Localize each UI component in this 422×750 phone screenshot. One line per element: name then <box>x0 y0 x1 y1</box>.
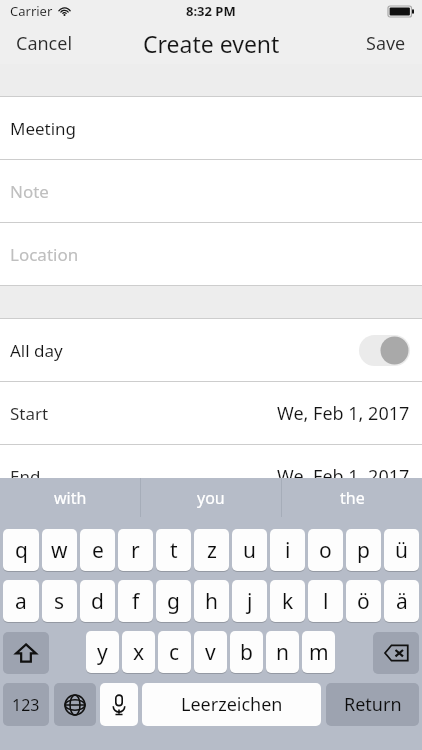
button[interactable]: Dictation <box>100 683 138 726</box>
button[interactable]: k <box>270 580 305 622</box>
button[interactable]: b <box>230 631 263 673</box>
staticText: Start <box>10 402 49 425</box>
button[interactable]: Shift <box>3 632 49 674</box>
button[interactable]: Start <box>0 382 422 444</box>
staticText: Save <box>366 31 406 56</box>
button[interactable]: j <box>232 580 267 622</box>
button[interactable]: Backspace <box>373 632 419 674</box>
staticText: Note <box>10 180 49 203</box>
staticText: Cancel <box>16 31 73 56</box>
button[interactable]: c <box>158 631 191 673</box>
button[interactable]: All day <box>0 319 422 381</box>
staticText: s <box>54 587 65 616</box>
staticText: Return <box>344 692 402 717</box>
staticText: Carrier <box>10 2 53 20</box>
staticText: the <box>340 487 365 509</box>
staticText: j <box>247 587 253 616</box>
button[interactable]: Note <box>0 160 422 222</box>
staticText: ä <box>396 587 408 616</box>
button[interactable]: Cancel <box>0 22 89 64</box>
staticText: n <box>276 638 289 667</box>
staticText: b <box>240 638 253 667</box>
button[interactable]: g <box>156 580 191 622</box>
button[interactable]: Return <box>326 683 419 726</box>
button[interactable]: ü <box>384 529 419 571</box>
button[interactable]: h <box>194 580 229 622</box>
button[interactable]: f <box>118 580 153 622</box>
staticText: Leerzeichen <box>181 692 283 717</box>
button[interactable]: e <box>80 529 115 571</box>
staticText: t <box>170 536 178 565</box>
button[interactable]: q <box>3 529 39 571</box>
staticText: All day <box>10 339 63 362</box>
staticText: a <box>15 587 27 616</box>
staticText: 123 <box>12 694 40 716</box>
button[interactable]: w <box>42 529 77 571</box>
button[interactable]: ä <box>384 580 419 622</box>
button[interactable]: y <box>86 631 119 673</box>
staticText: e <box>92 536 104 565</box>
staticText: o <box>319 536 332 565</box>
button[interactable]: o <box>308 529 343 571</box>
button[interactable]: p <box>346 529 381 571</box>
button[interactable]: i <box>270 529 305 571</box>
staticText: z <box>207 536 217 565</box>
button[interactable]: u <box>232 529 267 571</box>
button[interactable]: v <box>194 631 227 673</box>
staticText: We, Feb 1, 2017 <box>277 401 410 426</box>
staticText: f <box>132 587 140 616</box>
staticText: you <box>197 487 225 509</box>
button[interactable]: 123 <box>3 683 49 726</box>
button[interactable]: z <box>194 529 229 571</box>
button[interactable]: Change keyboard language <box>54 683 96 726</box>
button[interactable]: Leerzeichen <box>142 683 321 726</box>
staticText: u <box>243 536 256 565</box>
staticText: End <box>10 465 41 488</box>
button[interactable]: r <box>118 529 153 571</box>
button[interactable]: Location <box>0 223 422 285</box>
staticText: We, Feb 1, 2017 <box>277 464 410 489</box>
staticText: i <box>285 536 291 565</box>
staticText: 8:32 PM <box>186 2 236 20</box>
staticText: x <box>133 638 145 667</box>
staticText: h <box>205 587 218 616</box>
button[interactable]: ö <box>346 580 381 622</box>
button[interactable]: Meeting <box>0 97 422 159</box>
staticText: r <box>131 536 140 565</box>
staticText: q <box>15 536 28 565</box>
staticText: d <box>91 587 104 616</box>
button[interactable]: l <box>308 580 343 622</box>
staticText: g <box>167 587 180 616</box>
button[interactable]: a <box>3 580 39 622</box>
staticText: k <box>282 587 294 616</box>
staticText: ö <box>357 587 370 616</box>
staticText: y <box>97 638 108 667</box>
staticText: ü <box>395 536 408 565</box>
button[interactable]: Save <box>350 22 422 64</box>
button[interactable]: you <box>141 478 281 517</box>
staticText: c <box>169 638 180 667</box>
button[interactable]: with <box>0 478 140 517</box>
button[interactable]: s <box>42 580 77 622</box>
staticText: m <box>309 638 329 667</box>
staticText: w <box>51 536 68 565</box>
button[interactable]: x <box>122 631 155 673</box>
button[interactable]: m <box>302 631 335 673</box>
staticText: Meeting <box>10 117 77 140</box>
staticText: p <box>357 536 370 565</box>
button[interactable]: t <box>156 529 191 571</box>
staticText: with <box>54 487 87 509</box>
button[interactable]: n <box>266 631 299 673</box>
staticText: Create event <box>143 28 280 59</box>
staticText: Location <box>10 243 79 266</box>
button[interactable]: the <box>282 478 422 517</box>
button[interactable]: d <box>80 580 115 622</box>
button[interactable]: End <box>0 445 422 507</box>
staticText: l <box>323 587 329 616</box>
staticText: v <box>205 638 216 667</box>
